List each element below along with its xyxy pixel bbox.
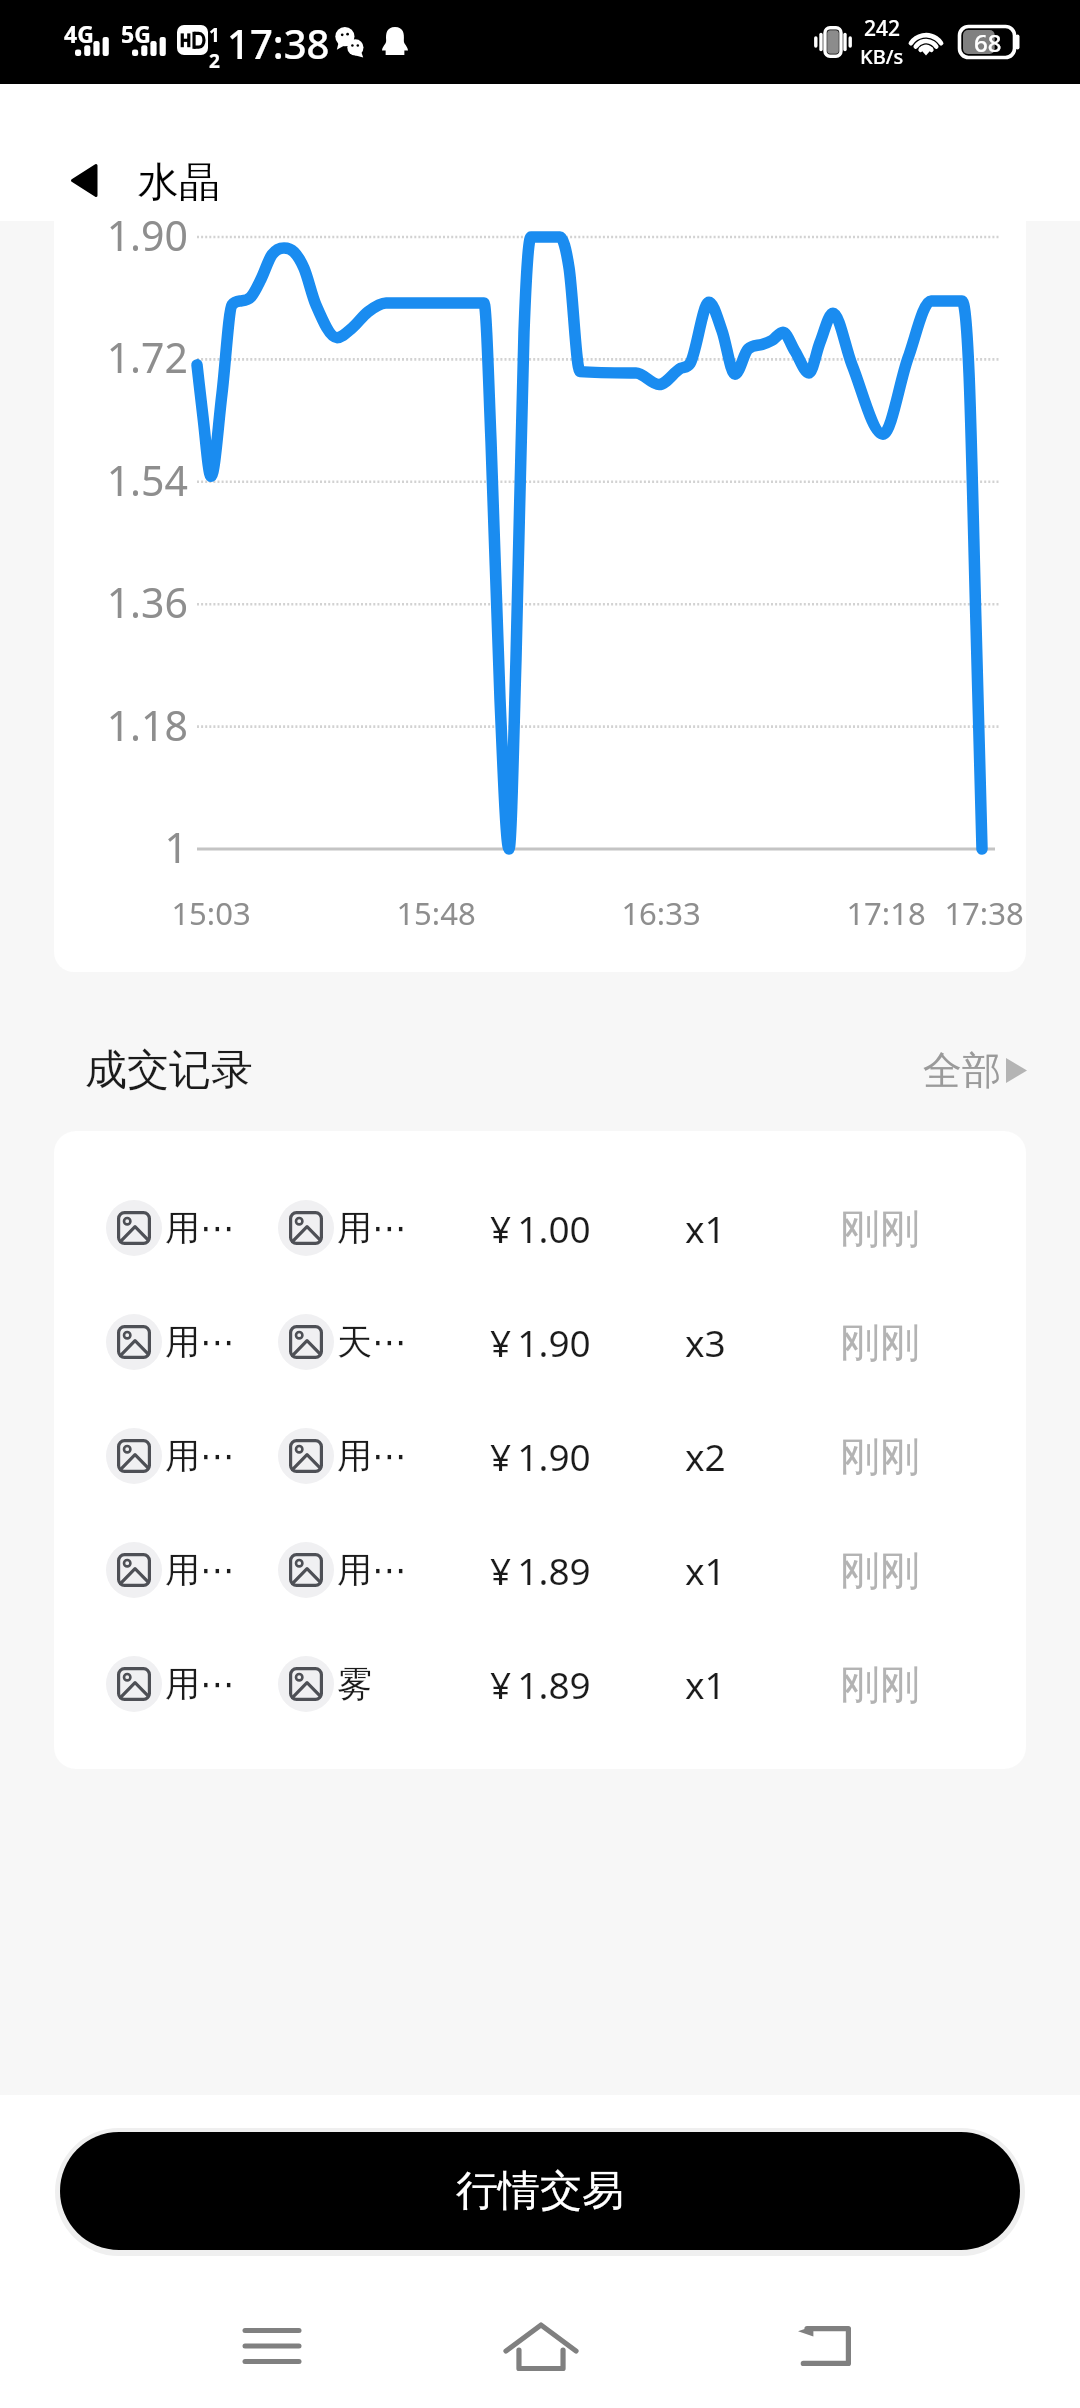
staticText: 1.90 [56, 221, 188, 263]
staticText: 17:38 [227, 16, 330, 70]
staticText: 68 [974, 26, 1002, 59]
staticText: 成交记录 [85, 1044, 253, 1097]
staticText: 用⋯ [165, 1662, 235, 1706]
staticText: 用⋯ [337, 1206, 407, 1250]
staticText: 雾 [337, 1662, 372, 1706]
staticText: 4G [64, 18, 94, 49]
staticText: 1.72 [56, 329, 188, 385]
button[interactable]: 用⋯ [54, 1627, 1026, 1741]
staticText: 1.54 [56, 452, 188, 508]
staticText: ¥ 1.89 [490, 1659, 591, 1709]
button[interactable]: 用⋯ [54, 1285, 1026, 1399]
staticText: ¥ 1.90 [490, 1431, 591, 1481]
button[interactable]: 用⋯ [54, 1399, 1026, 1513]
staticText: 刚刚 [840, 1659, 920, 1709]
staticText: 用⋯ [165, 1434, 235, 1478]
staticText: 15:48 [376, 892, 496, 934]
staticText: 用⋯ [337, 1434, 407, 1478]
staticText: 1 [209, 22, 220, 48]
staticText: KB/s [860, 43, 904, 70]
button[interactable]: 全部 [923, 1031, 1022, 1080]
staticText: 1 [56, 819, 188, 875]
button[interactable]: Back [764, 2287, 884, 2408]
staticText: x1 [685, 1545, 726, 1595]
staticText: 2 [209, 48, 220, 74]
staticText: 全部 [923, 1046, 1001, 1095]
staticText: 刚刚 [840, 1431, 920, 1481]
staticText: 242 [864, 14, 901, 43]
staticText: 17:38 [924, 892, 1026, 934]
staticText: 行情交易 [456, 2165, 624, 2218]
staticText: 用⋯ [165, 1548, 235, 1592]
staticText: 刚刚 [840, 1545, 920, 1595]
button[interactable]: Back [43, 120, 123, 200]
button[interactable]: 行情交易 [60, 2132, 1020, 2250]
staticText: x1 [685, 1659, 726, 1709]
staticText: 刚刚 [840, 1317, 920, 1367]
staticText: ¥ 1.89 [490, 1545, 591, 1595]
staticText: 用⋯ [337, 1548, 407, 1592]
button[interactable]: Home [481, 2287, 601, 2408]
staticText: 1.36 [56, 574, 188, 630]
button[interactable]: Recent apps [212, 2287, 332, 2408]
staticText: 16:33 [601, 892, 721, 934]
staticText: ¥ 1.00 [490, 1203, 591, 1253]
staticText: 水晶 [138, 157, 220, 209]
staticText: 刚刚 [840, 1203, 920, 1253]
staticText: 用⋯ [165, 1206, 235, 1250]
button[interactable]: 用⋯ [54, 1513, 1026, 1627]
staticText: 15:03 [151, 892, 271, 934]
staticText: x3 [685, 1317, 726, 1367]
staticText: 用⋯ [165, 1320, 235, 1364]
staticText: 5G [121, 18, 151, 49]
staticText: 1.18 [56, 697, 188, 753]
staticText: 天⋯ [337, 1320, 407, 1364]
button[interactable]: 用⋯ [54, 1171, 1026, 1285]
staticText: x2 [685, 1431, 726, 1481]
staticText: 17:18 [826, 892, 946, 934]
staticText: x1 [685, 1203, 726, 1253]
staticText: ¥ 1.90 [490, 1317, 591, 1367]
